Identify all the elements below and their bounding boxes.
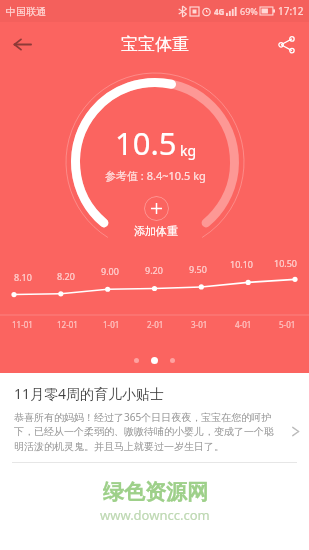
staticText: kg bbox=[180, 141, 197, 160]
staticText: 参考值 : 8.4~10.5 kg bbox=[105, 168, 206, 183]
staticText: 1-01 bbox=[103, 319, 120, 330]
staticText: 4G bbox=[214, 6, 225, 17]
button[interactable]: 8.10 bbox=[0, 257, 309, 337]
staticText: 恭喜所有的妈妈！经过了365个日日夜夜，宝宝在您的呵护下，已经从一个柔弱的、嗷嗷… bbox=[14, 410, 281, 453]
staticText: 69% bbox=[240, 5, 258, 17]
staticText: 11月零4周的育儿小贴士 bbox=[14, 384, 165, 403]
staticText: 4-01 bbox=[235, 319, 252, 330]
staticText: 添加体重 bbox=[134, 224, 178, 238]
staticText: 中国联通 bbox=[6, 5, 46, 18]
staticText: 8.20 bbox=[57, 270, 75, 282]
staticText: 绿色资源网 bbox=[103, 479, 208, 505]
button[interactable]: Back bbox=[0, 22, 45, 67]
staticText: 10.10 bbox=[230, 258, 254, 270]
staticText: 9.20 bbox=[145, 264, 163, 276]
staticText: 9.50 bbox=[189, 263, 207, 275]
staticText: 8.10 bbox=[14, 271, 32, 283]
staticText: 10.50 bbox=[274, 257, 298, 269]
staticText: 10.5 bbox=[115, 122, 177, 164]
button[interactable]: Share bbox=[264, 22, 309, 67]
staticText: 宝宝体重 bbox=[121, 34, 189, 55]
staticText: 17:12 bbox=[278, 4, 304, 18]
staticText: 11-01 bbox=[12, 319, 33, 330]
button[interactable]: 添加体重 bbox=[134, 196, 178, 238]
staticText: 9.00 bbox=[101, 265, 119, 277]
staticText: 5-01 bbox=[279, 319, 296, 330]
button[interactable]: 11月零4周的育儿小贴士 bbox=[0, 373, 309, 463]
staticText: 2-01 bbox=[147, 319, 164, 330]
staticText: 12-01 bbox=[57, 319, 78, 330]
staticText: www.downcc.com bbox=[100, 506, 210, 524]
staticText: 3-01 bbox=[191, 319, 208, 330]
